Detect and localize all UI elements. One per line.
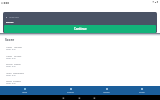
staticText: Novals xyxy=(6,72,12,74)
staticText: Lorem ipsu xyxy=(9,16,19,19)
button[interactable]: Home xyxy=(7,86,43,95)
button[interactable]: Novals xyxy=(0,72,160,80)
staticText: Lorem 25 m xyxy=(6,57,16,59)
staticText: Salesia xyxy=(6,80,12,82)
staticText: Home xyxy=(22,91,28,93)
staticText: Sip store xyxy=(14,55,22,57)
staticText: Exams xyxy=(6,21,14,24)
staticText: Score xyxy=(5,37,15,42)
button[interactable]: Arrears xyxy=(0,55,160,63)
staticText: Thursday xyxy=(14,46,22,48)
staticText: Lorem 20 m xyxy=(6,82,16,84)
staticText: Lorem 35 m xyxy=(6,74,16,76)
button[interactable]: Courses xyxy=(52,86,88,95)
button[interactable]: Continue xyxy=(4,25,156,33)
button[interactable]: Salesia xyxy=(0,80,160,86)
button[interactable]: Profile xyxy=(124,86,160,95)
button[interactable]: Lessons xyxy=(88,86,124,95)
button[interactable]: Gyorsta xyxy=(0,63,160,72)
staticText: Profile xyxy=(139,91,145,93)
staticText: Compute xyxy=(13,80,21,82)
staticText: Temperature xyxy=(13,72,24,74)
staticText: Gyorsta xyxy=(6,63,13,65)
staticText: Lorem 40 m xyxy=(6,65,16,67)
staticText: Arrears xyxy=(6,55,13,57)
staticText: Arrears xyxy=(6,46,13,48)
staticText: Lorem 30 m xyxy=(6,48,16,50)
button[interactable]: Arrears xyxy=(0,46,160,55)
staticText: Lessons xyxy=(103,91,110,93)
staticText: Courses xyxy=(67,91,74,93)
staticText: Creezes xyxy=(14,63,21,65)
staticText: Continue xyxy=(74,27,87,31)
